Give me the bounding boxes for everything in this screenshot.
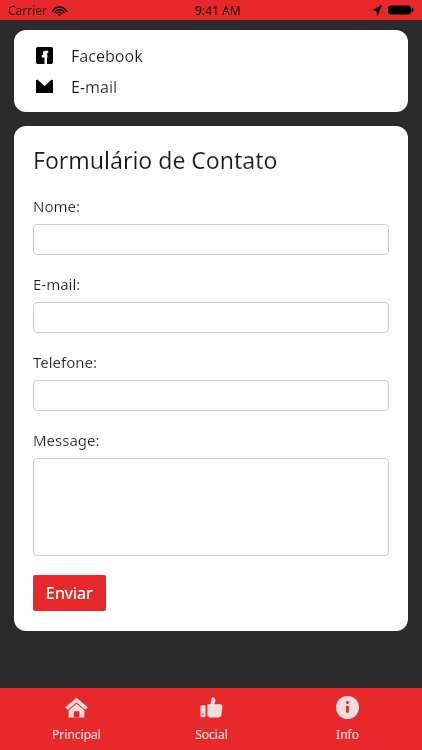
staticText: 9:41 AM: [195, 2, 241, 18]
staticText: Principal: [52, 726, 101, 742]
staticText: Telefone:: [33, 352, 98, 372]
staticText: Social: [195, 726, 228, 742]
staticText: Enviar: [46, 582, 93, 604]
button[interactable]: Social: [151, 690, 271, 748]
staticText: Info: [336, 726, 359, 742]
button[interactable]: [33, 458, 389, 556]
staticText: E-mail:: [33, 274, 81, 294]
staticText: E-mail: [71, 76, 118, 98]
button[interactable]: Facebook: [14, 40, 408, 71]
button[interactable]: Info: [287, 690, 407, 748]
button[interactable]: Enviar: [33, 575, 106, 611]
button[interactable]: E-mail: [14, 71, 408, 102]
staticText: Carrier: [8, 2, 48, 18]
button[interactable]: [33, 380, 389, 411]
staticText: Formulário de Contato: [33, 144, 278, 175]
staticText: Nome:: [33, 196, 80, 216]
staticText: Message:: [33, 430, 100, 450]
staticText: Facebook: [71, 45, 143, 67]
button[interactable]: Principal: [16, 690, 136, 748]
button[interactable]: [33, 302, 389, 333]
button[interactable]: [33, 224, 389, 255]
